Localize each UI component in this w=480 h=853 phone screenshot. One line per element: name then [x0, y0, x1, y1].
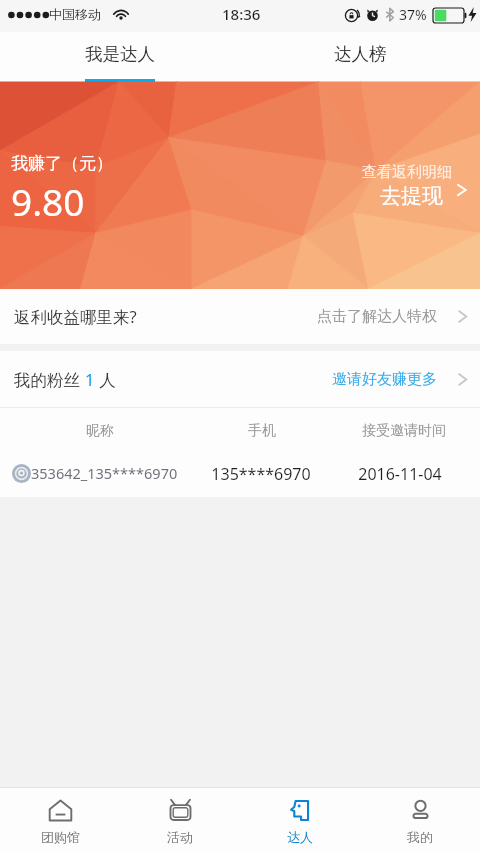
staticText: 去提现 [380, 183, 443, 209]
staticText: 我是达人 [85, 43, 155, 65]
staticText: 353642_135****6970 [31, 463, 178, 483]
staticText: 中国移动 [49, 6, 101, 22]
button[interactable]: 353642_135****6970 [0, 449, 480, 497]
staticText: 点击了解达人特权 [317, 307, 437, 326]
staticText: 达人榜 [334, 43, 387, 65]
button[interactable]: 返利收益哪里来? [0, 289, 480, 344]
staticText: 返利收益哪里来? [14, 305, 137, 328]
staticText: 邀请好友赚更多 [332, 370, 437, 389]
button[interactable]: 我是达人 [0, 32, 240, 82]
button[interactable]: 我的 [360, 788, 480, 853]
staticText: 2016-11-04 [340, 463, 460, 485]
staticText: 手机 [202, 422, 322, 440]
staticText: 查看返利明细 [362, 163, 452, 182]
staticText: 18:36 [222, 4, 261, 24]
button[interactable]: 活动 [120, 788, 240, 853]
staticText: 135****6970 [201, 463, 321, 485]
staticText: 9.80 [11, 176, 85, 226]
button[interactable]: 我的粉丝 [0, 351, 480, 407]
staticText: 达人 [287, 829, 313, 845]
staticText: 活动 [167, 829, 193, 845]
staticText: 团购馆 [41, 829, 80, 845]
staticText: 我赚了（元） [11, 153, 113, 174]
button[interactable]: 达人 [240, 788, 360, 853]
staticText: 1 [85, 368, 95, 390]
button[interactable]: 达人榜 [240, 32, 480, 82]
staticText: 37% [399, 5, 427, 24]
staticText: 昵称 [40, 422, 160, 440]
staticText: 我的 [407, 829, 433, 845]
staticText: 接受邀请时间 [344, 422, 464, 440]
staticText: 人 [95, 368, 116, 391]
button[interactable]: 查看返利明细 [356, 162, 480, 212]
staticText: 我的粉丝 [14, 368, 85, 391]
button[interactable]: 团购馆 [0, 788, 120, 853]
